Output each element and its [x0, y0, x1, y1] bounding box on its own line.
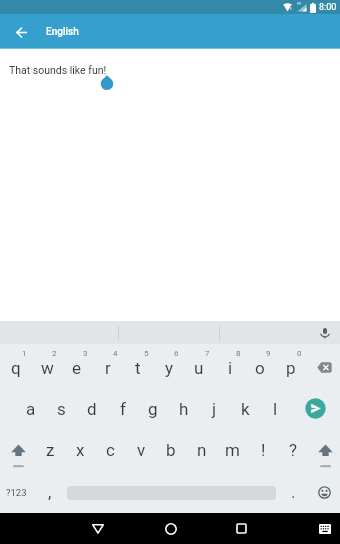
button[interactable]	[300, 393, 330, 423]
button[interactable]	[311, 514, 339, 543]
staticText: s	[57, 399, 66, 419]
button[interactable]: y	[154, 347, 184, 389]
button[interactable]: t	[123, 347, 153, 389]
button[interactable]: d	[77, 388, 107, 430]
staticText: That sounds like fun!	[9, 64, 107, 76]
button[interactable]: k	[230, 388, 260, 430]
staticText: English	[46, 26, 79, 38]
staticText: o	[255, 358, 265, 378]
staticText: l	[273, 399, 278, 419]
button[interactable]	[227, 514, 256, 543]
staticText: f	[120, 399, 126, 419]
button[interactable]: a	[16, 388, 46, 430]
button[interactable]: z	[35, 429, 65, 471]
staticText: 9	[266, 349, 271, 358]
staticText: c	[106, 440, 115, 460]
staticText: a	[26, 399, 36, 419]
button[interactable]	[308, 471, 340, 513]
button[interactable]	[308, 347, 340, 387]
button[interactable]: l	[260, 388, 290, 430]
staticText: i	[228, 358, 233, 378]
button[interactable]: g	[138, 388, 168, 430]
button[interactable]: f	[108, 388, 138, 430]
button[interactable]: q	[1, 347, 31, 389]
button[interactable]: n	[187, 429, 217, 471]
staticText: u	[194, 358, 204, 378]
button[interactable]: x	[65, 429, 95, 471]
button[interactable]	[309, 429, 340, 471]
button[interactable]	[8, 19, 34, 45]
staticText: !	[261, 440, 266, 460]
staticText: q	[11, 358, 21, 378]
staticText: m	[225, 440, 240, 460]
staticText: w	[41, 358, 54, 378]
staticText: v	[137, 440, 146, 460]
button[interactable]: b	[156, 429, 186, 471]
staticText: d	[87, 399, 97, 419]
button[interactable]	[156, 514, 185, 543]
staticText: .	[291, 482, 296, 502]
button[interactable]: j	[199, 388, 229, 430]
staticText: j	[212, 399, 217, 419]
button[interactable]	[312, 321, 337, 344]
button[interactable]: p	[276, 347, 306, 389]
staticText: k	[241, 399, 250, 419]
staticText: x	[76, 440, 85, 460]
button[interactable]: ,	[35, 471, 65, 513]
staticText: n	[197, 440, 207, 460]
staticText: 8	[236, 349, 241, 358]
staticText: ?	[289, 440, 298, 460]
staticText: 1	[22, 349, 27, 358]
staticText: h	[179, 399, 189, 419]
button[interactable]: v	[126, 429, 156, 471]
staticText: 8:00	[319, 2, 337, 13]
button[interactable]: !	[248, 429, 278, 471]
staticText: 6	[174, 349, 179, 358]
staticText: 4	[113, 349, 118, 358]
button[interactable]: c	[95, 429, 125, 471]
staticText: 7	[205, 349, 210, 358]
staticText: ?123	[6, 487, 27, 498]
staticText: 2	[52, 349, 57, 358]
staticText: e	[72, 358, 82, 378]
button[interactable]: u	[184, 347, 214, 389]
staticText: 5	[144, 349, 149, 358]
button[interactable]: ?123	[0, 471, 32, 513]
button[interactable]: r	[93, 347, 123, 389]
button[interactable]: ?	[278, 429, 308, 471]
button[interactable]: s	[46, 388, 76, 430]
button[interactable]: .	[278, 471, 308, 513]
staticText: ,	[48, 482, 52, 502]
staticText: b	[166, 440, 176, 460]
staticText: r	[105, 358, 111, 378]
staticText: g	[148, 399, 158, 419]
staticText: z	[46, 440, 55, 460]
button[interactable]: i	[215, 347, 245, 389]
staticText: y	[165, 358, 174, 378]
staticText: p	[286, 358, 296, 378]
staticText: t	[135, 358, 141, 378]
staticText: 0	[297, 349, 302, 358]
button[interactable]: h	[169, 388, 199, 430]
button[interactable]	[2, 429, 34, 471]
button[interactable]: w	[32, 347, 62, 389]
button[interactable]	[83, 514, 112, 543]
button[interactable]: o	[245, 347, 275, 389]
button[interactable]: e	[62, 347, 92, 389]
button[interactable]: m	[217, 429, 247, 471]
staticText: 3	[83, 349, 88, 358]
